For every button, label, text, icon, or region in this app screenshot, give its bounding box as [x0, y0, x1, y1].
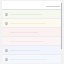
button[interactable]: Item 6 [2, 55, 62, 63]
button[interactable]: Item 2 [2, 19, 62, 27]
button[interactable]: Item 5 [2, 46, 62, 54]
other: Item 5 [3, 46, 9, 54]
button[interactable]: Item 3 [2, 28, 62, 36]
button[interactable]: Item 1 [2, 10, 62, 18]
button[interactable] [2, 1, 62, 9]
other: Item 6 [3, 55, 9, 63]
button[interactable]: Item 4 [2, 37, 62, 45]
other: Item 2 [3, 19, 9, 27]
other: Item 1 [3, 10, 9, 18]
